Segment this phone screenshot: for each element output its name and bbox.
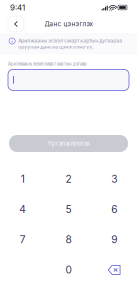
staticText: 3 [111, 173, 117, 185]
button[interactable]: 7 [0, 224, 46, 255]
staticText: Данс цэнэглэх [44, 20, 92, 28]
staticText: 6 [111, 203, 117, 215]
button[interactable]: 1 [0, 164, 46, 194]
staticText: 7 [20, 233, 26, 246]
button[interactable]: 6 [91, 194, 137, 224]
button[interactable]: 5 [46, 194, 91, 224]
button[interactable]: Үргэлжлүүлэх [9, 135, 128, 152]
staticText: 1 [21, 173, 25, 185]
button[interactable]: 3 [91, 164, 137, 194]
staticText: Арилжааны эсвэл смарт картын дугаар [8, 61, 87, 66]
staticText: 5 [65, 203, 71, 215]
button[interactable]: 2 [46, 164, 91, 194]
button[interactable]: 9 [91, 224, 137, 255]
button[interactable]: 0 [46, 255, 91, 285]
staticText: 4 [19, 203, 26, 215]
staticText: 9:41 [10, 3, 25, 12]
button[interactable]: 4 [0, 194, 46, 224]
button[interactable]: Delete [91, 255, 137, 285]
staticText: 2 [65, 173, 71, 185]
staticText: 0 [65, 264, 71, 276]
staticText: 8 [65, 233, 71, 246]
button[interactable]: 8 [46, 224, 91, 255]
staticText: 9 [111, 233, 117, 246]
button[interactable]: Back [8, 16, 24, 32]
staticText: Үргэлжлүүлэх [47, 140, 89, 147]
staticText: Арилжааны эсвэл смарт картын дугаараа ор… [18, 37, 122, 50]
